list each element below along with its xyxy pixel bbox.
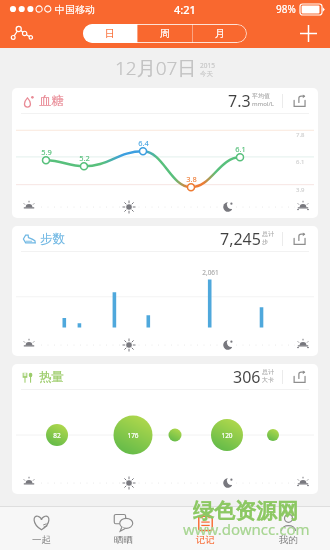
button[interactable]: 血糖: [12, 88, 318, 218]
staticText: 大卡: [262, 376, 274, 384]
button[interactable]: 晒晒: [82, 507, 164, 550]
button[interactable]: 一起: [0, 507, 82, 550]
staticText: 306: [233, 366, 261, 388]
button[interactable]: Add: [294, 19, 322, 47]
staticText: 7,245: [220, 228, 261, 250]
staticText: 总计: [262, 368, 274, 376]
button[interactable]: Share: [291, 230, 309, 248]
staticText: 总计: [262, 230, 274, 238]
staticText: 月: [215, 27, 225, 40]
staticText: 血糖: [39, 93, 64, 109]
staticText: 我的: [279, 534, 298, 546]
staticText: 4:21: [174, 2, 196, 17]
staticText: 5.2: [79, 153, 90, 163]
staticText: 120: [221, 431, 233, 440]
button[interactable]: Share: [291, 92, 309, 110]
button[interactable]: 我的: [247, 507, 330, 550]
staticText: 176: [127, 431, 139, 440]
staticText: 一起: [32, 534, 51, 546]
staticText: 热量: [39, 369, 64, 385]
staticText: 7.8: [296, 131, 305, 139]
button[interactable]: Share: [291, 368, 309, 386]
staticText: 3.9: [296, 186, 305, 194]
button[interactable]: 热量: [12, 364, 318, 494]
staticText: 3.8: [186, 174, 197, 184]
staticText: 82: [53, 431, 61, 440]
staticText: 今天: [200, 70, 213, 78]
staticText: 98%: [276, 2, 296, 16]
button[interactable]: 月: [193, 24, 247, 43]
staticText: 2,061: [202, 268, 219, 277]
staticText: 5.9: [41, 147, 52, 157]
button[interactable]: 日: [83, 24, 137, 43]
staticText: 绿色资源网: [193, 498, 298, 524]
staticText: 晒晒: [114, 534, 133, 546]
staticText: 2015: [200, 61, 215, 70]
staticText: 周: [160, 27, 170, 40]
staticText: 6.1: [296, 158, 305, 166]
staticText: 步数: [40, 231, 65, 247]
button[interactable]: 步数: [12, 226, 318, 356]
staticText: 平均值: [252, 92, 270, 100]
staticText: 12月07日: [115, 55, 197, 81]
staticText: 7.3: [228, 90, 251, 112]
staticText: www.downcc.com: [183, 519, 310, 539]
staticText: 6.1: [235, 144, 246, 154]
staticText: 6.4: [138, 138, 149, 148]
button[interactable]: Trends: [8, 19, 36, 47]
staticText: 记记: [196, 534, 215, 546]
staticText: 中国移动: [55, 3, 95, 16]
button[interactable]: 记记: [164, 507, 247, 550]
staticText: 日: [105, 27, 115, 40]
staticText: 步: [262, 238, 268, 246]
staticText: mmol/L: [252, 100, 274, 108]
button[interactable]: 周: [138, 24, 192, 43]
